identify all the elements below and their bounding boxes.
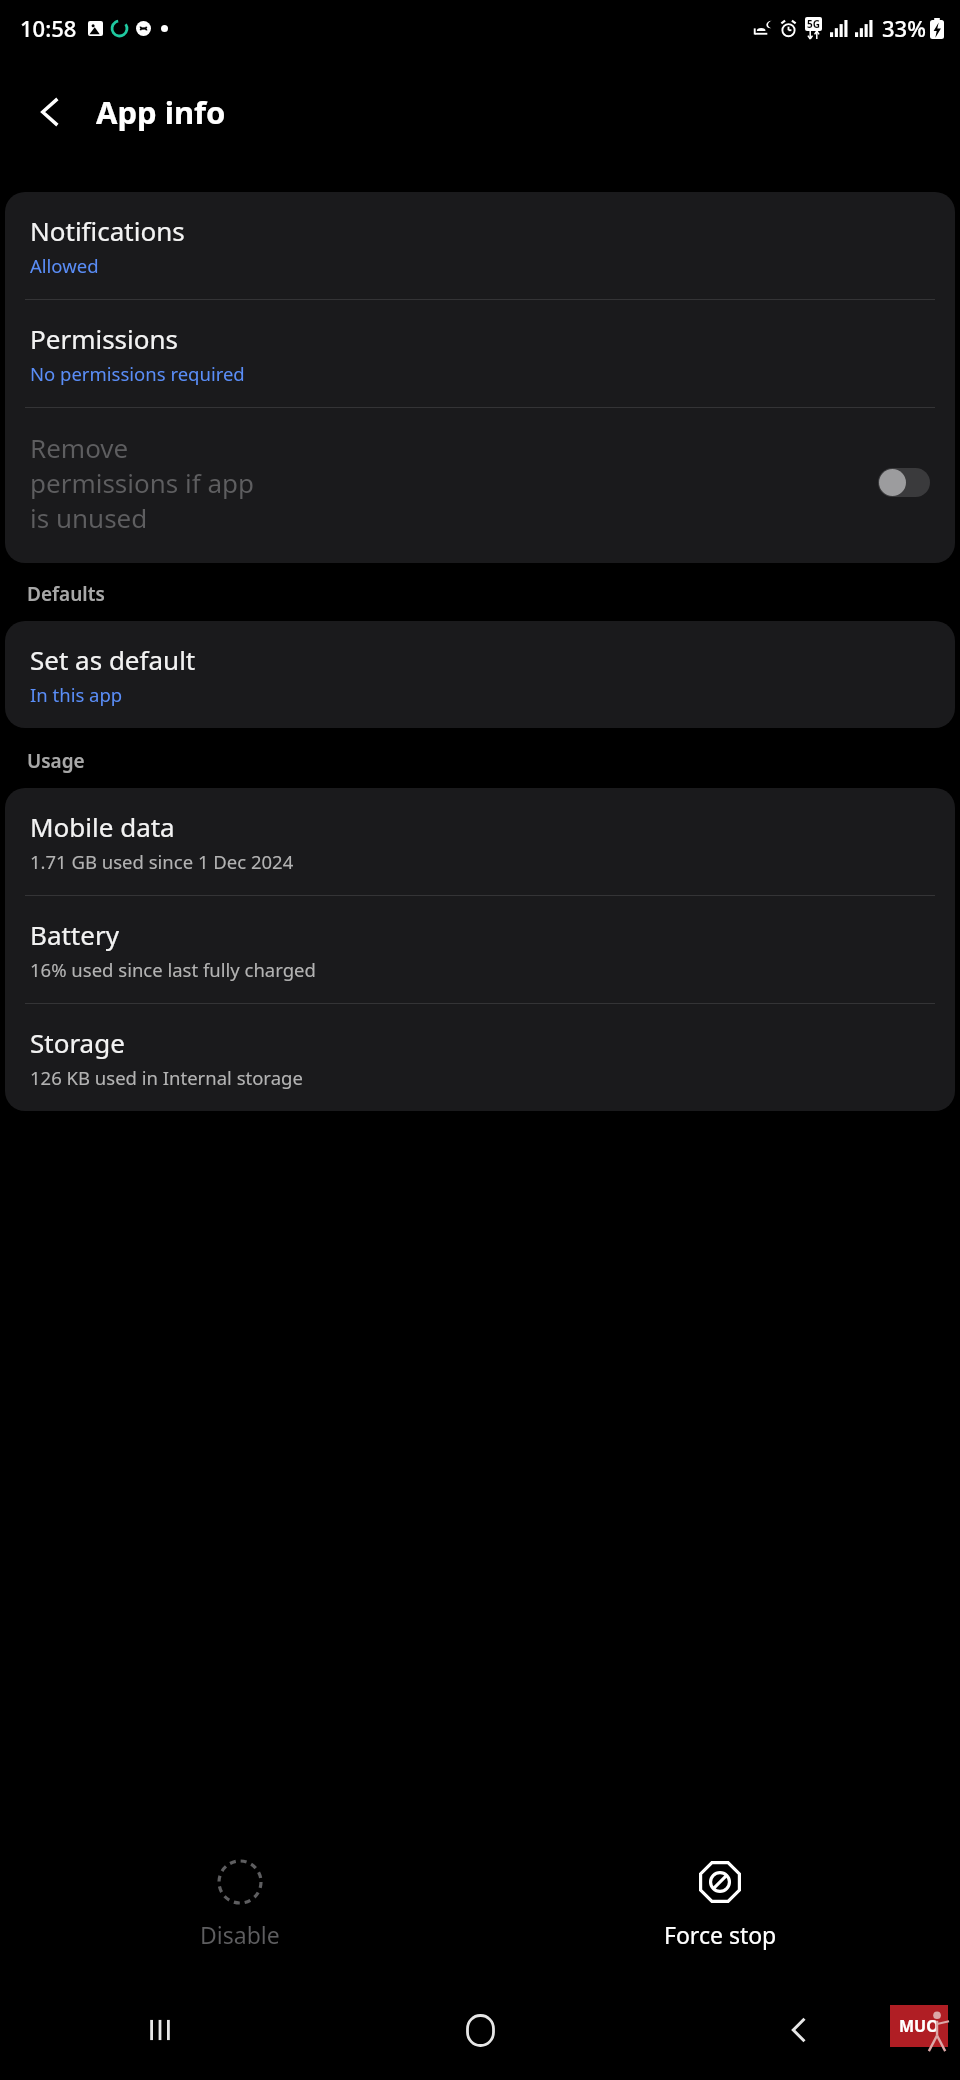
button[interactable]: Home — [320, 1980, 640, 2080]
staticText: MUO — [899, 2015, 939, 2037]
staticText: Mobile data — [30, 809, 175, 844]
staticText: 16% used since last fully charged — [30, 957, 316, 982]
button[interactable]: Mobile data — [5, 788, 955, 895]
staticText: 10:58 — [20, 13, 77, 43]
button[interactable]: Back — [640, 1980, 960, 2080]
staticText: Force stop — [664, 1919, 777, 1950]
button[interactable]: Disable — [0, 1828, 480, 1980]
staticText: No permissions required — [30, 361, 245, 386]
button[interactable]: Back — [22, 83, 80, 141]
staticText: Defaults — [27, 581, 105, 607]
button[interactable]: Set as default — [5, 621, 955, 728]
staticText: 1.71 GB used since 1 Dec 2024 — [30, 849, 294, 874]
staticText: Disable — [200, 1919, 280, 1950]
button[interactable]: Remove permissions if app is unused — [5, 408, 955, 563]
staticText: 33% — [882, 13, 926, 43]
staticText: Allowed — [30, 253, 99, 278]
staticText: Storage — [30, 1025, 125, 1060]
staticText: Permissions — [30, 321, 179, 356]
button[interactable]: Storage — [5, 1004, 955, 1111]
staticText: Notifications — [30, 213, 185, 248]
staticText: App info — [96, 91, 226, 133]
staticText: Battery — [30, 917, 119, 952]
button[interactable]: Notifications — [5, 192, 955, 299]
button[interactable]: Battery — [5, 896, 955, 1003]
staticText: 126 KB used in Internal storage — [30, 1065, 303, 1090]
button[interactable]: Force stop — [480, 1828, 960, 1980]
button[interactable]: Recents — [0, 1980, 320, 2080]
staticText: Remove permissions if app is unused — [30, 430, 278, 535]
staticText: Set as default — [30, 642, 196, 677]
staticText: Usage — [27, 748, 85, 774]
staticText: In this app — [30, 682, 123, 707]
button[interactable]: Permissions — [5, 300, 955, 407]
staticText: 5G — [807, 17, 820, 31]
